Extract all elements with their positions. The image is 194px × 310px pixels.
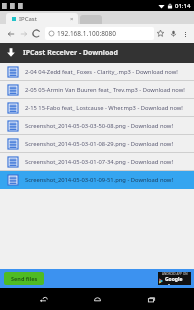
- staticText: Screenshot_2014-05-03-03-50-08.png - Dow…: [25, 122, 173, 130]
- staticText: ×: [70, 15, 74, 23]
- button[interactable]: Screenshot_2014-05-03-01-08-29.png - Dow…: [0, 135, 194, 153]
- button[interactable]: Menu: [180, 29, 190, 39]
- button[interactable]: Voice search: [167, 27, 180, 40]
- button[interactable]: Send files: [4, 272, 44, 285]
- staticText: 01:14: [175, 2, 191, 10]
- staticText: IPCast: [19, 15, 37, 23]
- button[interactable]: Screenshot_2014-05-03-03-50-08.png - Dow…: [0, 117, 194, 135]
- staticText: 2-15 15-Fabo feat_ Lostcause - Wher.mp3 …: [25, 104, 183, 112]
- staticText: Screenshot_2014-05-03-01-08-29.png - Dow…: [25, 140, 173, 148]
- button[interactable]: Get it on Google Play: [158, 272, 191, 285]
- button[interactable]: 2-05 05-Armin Van Buuren feat_ Trev.mp3 …: [0, 81, 194, 99]
- button[interactable]: Screenshot_2014-05-03-01-09-51.png - Dow…: [0, 171, 194, 189]
- staticText: Screenshot_2014-05-03-01-07-34.png - Dow…: [25, 158, 173, 166]
- button[interactable]: 2-15 15-Fabo feat_ Lostcause - Wher.mp3 …: [0, 99, 194, 117]
- button[interactable]: Screenshot_2014-05-03-01-07-34.png - Dow…: [0, 153, 194, 171]
- button[interactable]: Forward: [17, 27, 30, 40]
- button[interactable]: Recents: [140, 288, 162, 310]
- button[interactable]: Back: [32, 288, 54, 310]
- staticText: 192.168.1.100:8080: [57, 29, 117, 38]
- staticText: ANDROID APP ON: [162, 272, 188, 276]
- button[interactable]: 2-04 04-Zedd feat_ Foxes - Clarity_.mp3 …: [0, 63, 194, 81]
- staticText: 2-05 05-Armin Van Buuren feat_ Trev.mp3 …: [25, 86, 185, 94]
- button[interactable]: IPCast: [6, 13, 78, 24]
- staticText: Send files: [11, 275, 38, 282]
- button[interactable]: Home: [86, 288, 108, 310]
- staticText: Google play: [165, 276, 191, 285]
- button[interactable]: Reload: [30, 27, 43, 40]
- button[interactable]: 192.168.1.100:8080: [45, 27, 154, 40]
- staticText: 2-04 04-Zedd feat_ Foxes - Clarity_.mp3 …: [25, 68, 178, 76]
- button[interactable]: Bookmark: [154, 27, 167, 40]
- button[interactable]: Back: [4, 27, 17, 40]
- staticText: Screenshot_2014-05-03-01-09-51.png - Dow…: [25, 176, 173, 184]
- staticText: IPCast Receiver - Download: [23, 48, 118, 58]
